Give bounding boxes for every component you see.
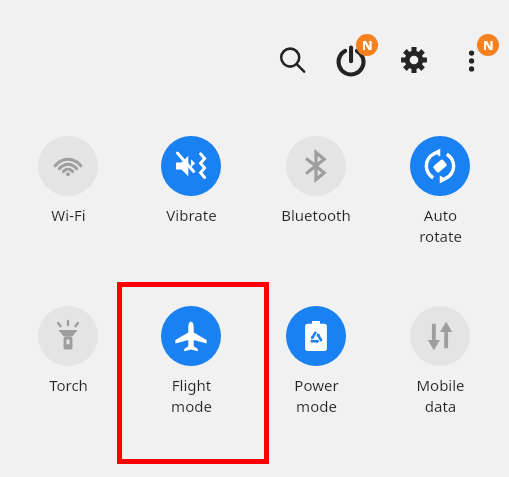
staticText: N [483, 36, 494, 54]
staticText: Wi-Fi [51, 205, 86, 225]
button[interactable]: Vibrate [130, 136, 252, 256]
button[interactable]: Mobile data [379, 306, 501, 426]
button[interactable]: Flight mode [130, 306, 252, 426]
staticText: Mobile data [416, 375, 465, 417]
staticText: Bluetooth [281, 205, 351, 225]
button[interactable]: Wi-Fi [7, 136, 129, 256]
staticText: N [362, 36, 373, 54]
button[interactable]: Torch [7, 306, 129, 426]
button[interactable]: Settings [390, 36, 438, 84]
staticText: Auto rotate [419, 205, 462, 247]
button[interactable]: Bluetooth [255, 136, 377, 256]
staticText: Torch [49, 375, 88, 395]
staticText: Vibrate [166, 205, 217, 225]
button[interactable]: Search [268, 36, 316, 84]
staticText: Power mode [294, 375, 339, 417]
button[interactable]: Auto rotate [379, 136, 501, 256]
button[interactable]: Power mode [255, 306, 377, 426]
button[interactable]: More options [449, 36, 497, 84]
button[interactable]: Power [328, 36, 376, 84]
staticText: Flight mode [171, 375, 212, 417]
